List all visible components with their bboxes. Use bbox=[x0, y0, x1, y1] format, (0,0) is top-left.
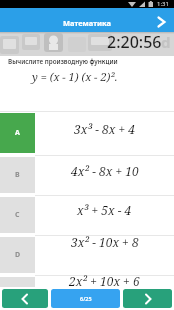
button[interactable] bbox=[0, 235, 174, 275]
button[interactable] bbox=[0, 113, 174, 153]
staticText: C bbox=[15, 210, 20, 220]
staticText: y = (x − 1) (x − 2)². bbox=[32, 69, 118, 84]
staticText: 3x² − 10x + 8 bbox=[71, 234, 139, 250]
staticText: d bbox=[161, 32, 171, 52]
button[interactable] bbox=[0, 275, 174, 310]
staticText: 1:31 bbox=[157, 0, 169, 8]
button[interactable]: 6/25 bbox=[51, 289, 120, 308]
staticText: 4x² − 8x + 10 bbox=[71, 163, 139, 179]
staticText: Математика bbox=[63, 18, 112, 28]
staticText: Вычислите производную функции bbox=[8, 57, 118, 66]
staticText: 2x² + 10x + 6 bbox=[69, 273, 140, 289]
button[interactable] bbox=[0, 195, 174, 235]
staticText: 3x³ − 8x + 4 bbox=[74, 121, 135, 137]
staticText: 2:20:56 bbox=[107, 31, 162, 53]
button[interactable] bbox=[0, 8, 174, 32]
staticText: B bbox=[15, 170, 20, 180]
staticText: x³ + 5x − 4 bbox=[77, 202, 132, 218]
staticText: A bbox=[15, 128, 20, 138]
button[interactable] bbox=[123, 289, 172, 308]
staticText: 6/25 bbox=[80, 295, 92, 302]
button[interactable] bbox=[0, 155, 174, 195]
staticText: D bbox=[15, 250, 21, 260]
button[interactable] bbox=[2, 289, 48, 308]
